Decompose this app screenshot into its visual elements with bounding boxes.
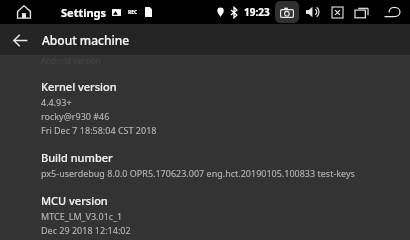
staticText: 19:23 (244, 5, 270, 19)
button[interactable]: Screenshot (275, 1, 299, 23)
staticText: MCU version (41, 193, 108, 208)
staticText: MTCE_LM_V3.01c_1 (41, 210, 123, 222)
button[interactable]: Recent apps (351, 1, 373, 23)
staticText: REC (128, 9, 138, 16)
button[interactable]: Kernel version (0, 65, 410, 136)
staticText: Kernel version (41, 79, 117, 94)
staticText: rocky@r930 #46 (41, 110, 110, 122)
staticText: Fri Dec 7 18:58:04 CST 2018 (41, 124, 157, 136)
button[interactable]: Home (13, 1, 35, 23)
button[interactable]: Navigate up (6, 26, 34, 54)
button[interactable]: MCU version (0, 179, 410, 236)
staticText: About machine (42, 32, 130, 48)
button[interactable]: Close (326, 1, 348, 23)
staticText: Android version (41, 55, 101, 65)
button[interactable]: Volume (302, 1, 324, 23)
staticText: Settings (61, 5, 107, 20)
button[interactable]: Back (379, 0, 405, 24)
staticText: Dec 29 2018 12:14:02 (41, 224, 131, 236)
staticText: 4.4.93+ (41, 96, 72, 108)
button[interactable]: Build number (0, 136, 410, 179)
staticText: Build number (41, 150, 113, 165)
staticText: px5-userdebug 8.0.0 OPR5.170623.007 eng.… (41, 167, 355, 179)
